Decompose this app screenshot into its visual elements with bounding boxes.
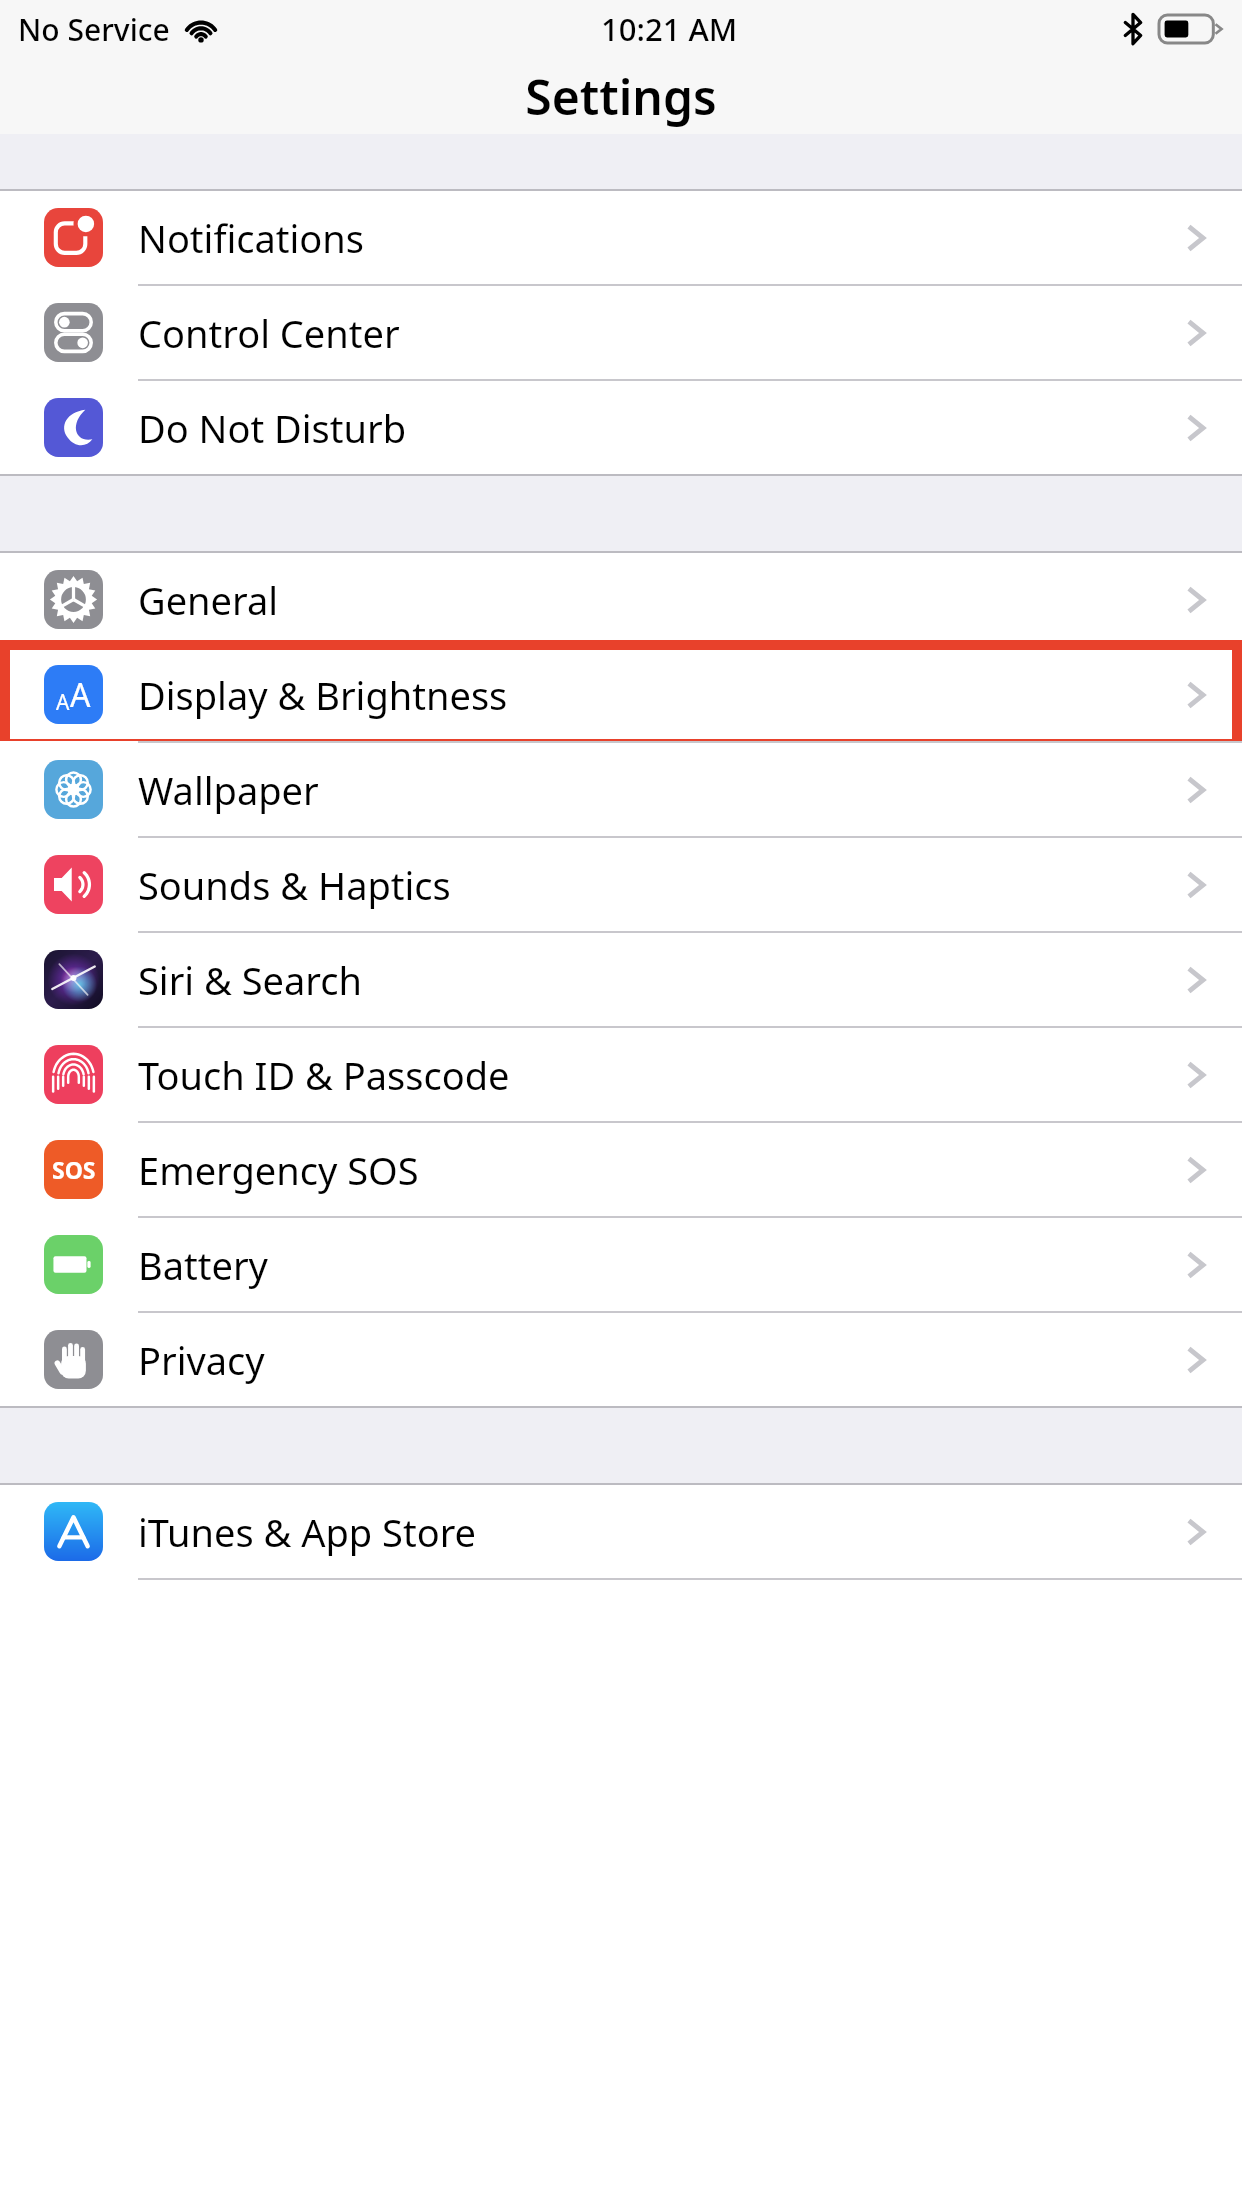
staticText: A bbox=[70, 673, 91, 717]
button[interactable]: Control Center bbox=[0, 286, 1242, 379]
staticText: Siri & Search bbox=[138, 954, 363, 1006]
staticText: Do Not Disturb bbox=[138, 402, 407, 454]
button[interactable]: Privacy bbox=[0, 1313, 1242, 1406]
staticText: No Service bbox=[18, 9, 170, 50]
button[interactable]: Battery bbox=[0, 1218, 1242, 1311]
button[interactable]: Wallpaper bbox=[0, 743, 1242, 836]
button[interactable]: Sounds & Haptics bbox=[0, 838, 1242, 931]
staticText: Notifications bbox=[138, 212, 365, 264]
staticText: Control Center bbox=[138, 307, 400, 359]
button[interactable]: iTunes & App Store bbox=[0, 1485, 1242, 1578]
staticText: iTunes & App Store bbox=[138, 1506, 477, 1558]
button[interactable]: SOS bbox=[0, 1123, 1242, 1216]
staticText: Battery bbox=[138, 1239, 268, 1291]
staticText: 10:21 AM bbox=[601, 8, 738, 50]
staticText: Settings bbox=[525, 64, 717, 129]
button[interactable]: Touch ID & Passcode bbox=[0, 1028, 1242, 1121]
button[interactable]: Siri & Search bbox=[0, 933, 1242, 1026]
button[interactable]: Notifications bbox=[0, 191, 1242, 284]
staticText: Display & Brightness bbox=[138, 669, 508, 721]
button[interactable]: Do Not Disturb bbox=[0, 381, 1242, 474]
staticText: SOS bbox=[52, 1154, 96, 1185]
button[interactable]: General bbox=[0, 553, 1242, 646]
staticText: A bbox=[56, 688, 70, 717]
staticText: General bbox=[138, 574, 279, 626]
staticText: Sounds & Haptics bbox=[138, 859, 451, 911]
staticText: Touch ID & Passcode bbox=[138, 1049, 510, 1101]
staticText: Wallpaper bbox=[138, 764, 319, 816]
staticText: Privacy bbox=[138, 1334, 265, 1386]
button[interactable]: A bbox=[0, 648, 1242, 741]
staticText: Emergency SOS bbox=[138, 1144, 419, 1196]
